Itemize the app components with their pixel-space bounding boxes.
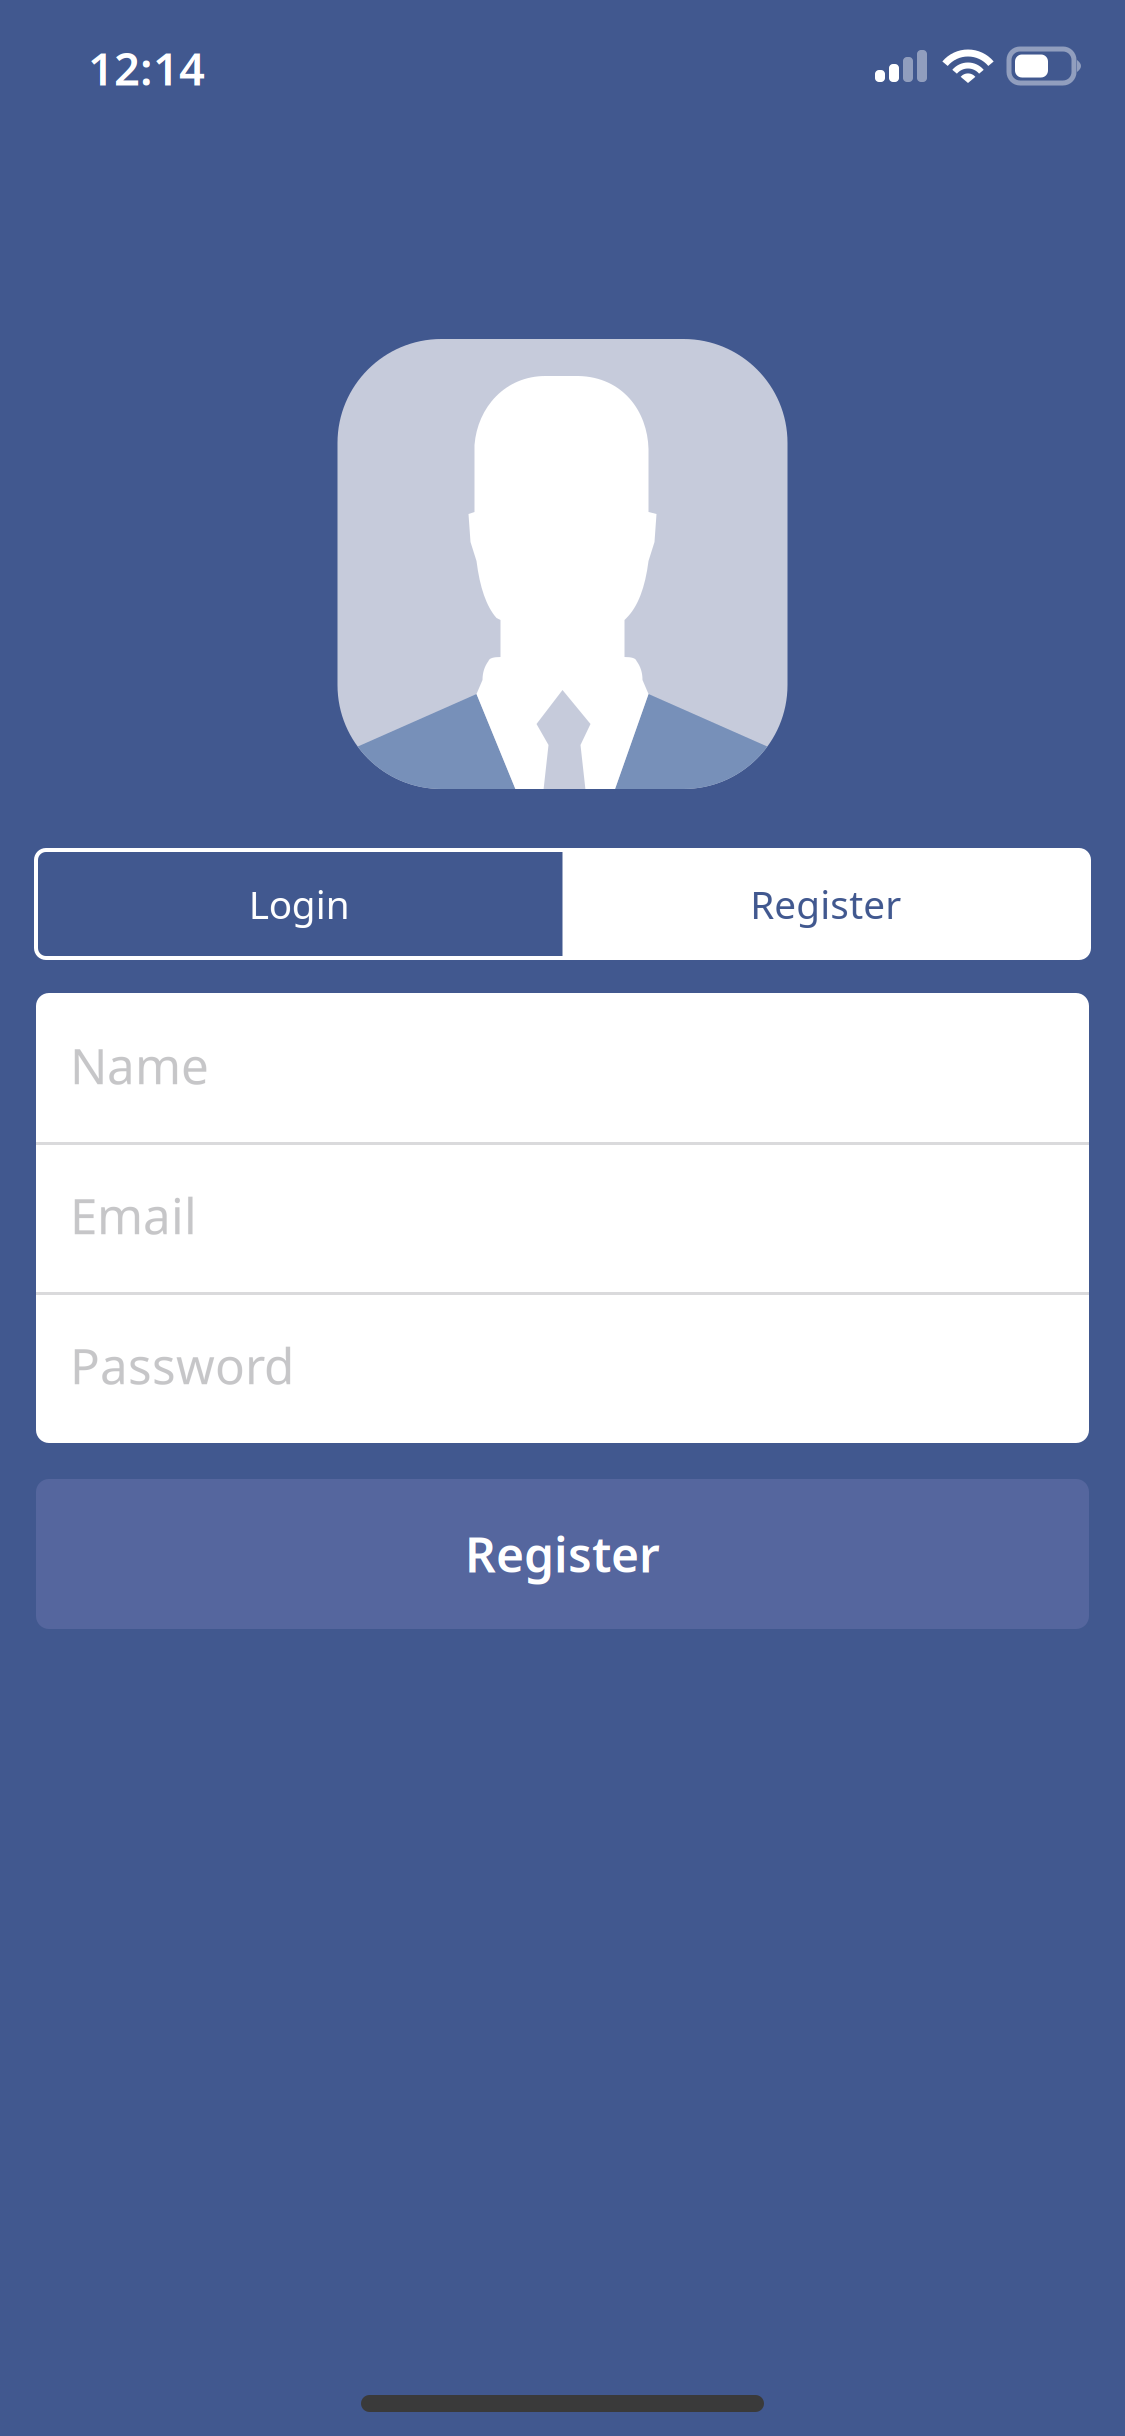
button[interactable]: Register bbox=[562, 850, 1089, 958]
staticText: Register bbox=[750, 878, 901, 930]
staticText: Name bbox=[70, 1032, 209, 1098]
staticText: Register bbox=[465, 1522, 660, 1586]
button[interactable]: Register bbox=[36, 1479, 1089, 1629]
staticText: 12:14 bbox=[88, 38, 205, 98]
staticText: Login bbox=[249, 878, 350, 930]
button[interactable]: Login bbox=[36, 850, 562, 958]
staticText: Email bbox=[70, 1182, 197, 1248]
staticText: Password bbox=[70, 1332, 294, 1398]
